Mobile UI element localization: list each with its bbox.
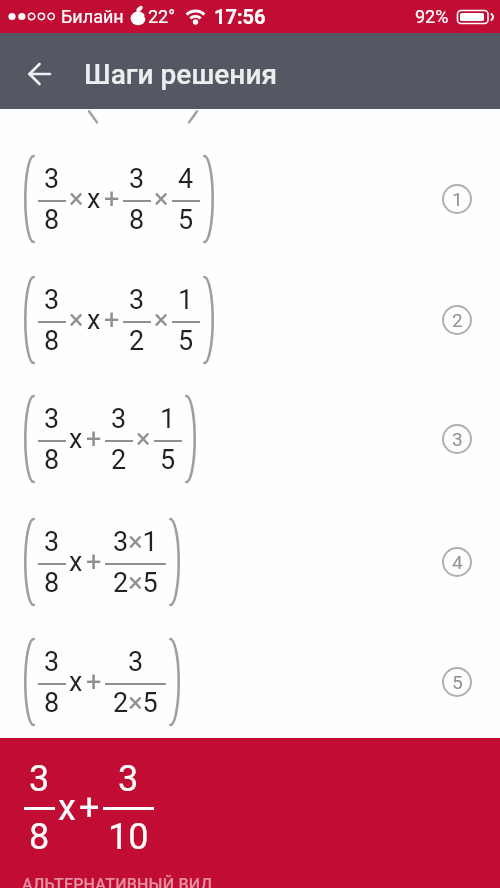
staticText: 4 bbox=[452, 551, 463, 573]
staticText: + bbox=[79, 787, 100, 829]
staticText: 1 bbox=[452, 188, 463, 210]
staticText: x bbox=[69, 666, 83, 698]
staticText: 4 bbox=[178, 163, 194, 195]
staticText: 2 bbox=[452, 309, 463, 331]
staticText: 3×1 bbox=[113, 526, 158, 558]
button[interactable]: 3 bbox=[0, 260, 500, 380]
staticText: 5 bbox=[452, 671, 463, 693]
staticText: Шаги решения bbox=[84, 58, 278, 91]
staticText: 3 bbox=[29, 758, 50, 800]
button[interactable] bbox=[16, 47, 64, 95]
staticText: 3 bbox=[44, 403, 60, 435]
staticText: 3 bbox=[129, 284, 145, 316]
staticText: 3 bbox=[44, 646, 60, 678]
staticText: + bbox=[104, 304, 120, 336]
staticText: 1 bbox=[160, 403, 176, 435]
staticText: 3 bbox=[129, 163, 145, 195]
staticText: 8 bbox=[129, 204, 145, 236]
staticText: 5 bbox=[178, 204, 194, 236]
staticText: 8 bbox=[29, 816, 50, 858]
staticText: 2 bbox=[129, 325, 145, 357]
button[interactable]: 3 bbox=[0, 622, 500, 742]
staticText: x bbox=[87, 304, 101, 336]
staticText: 2×5 bbox=[113, 567, 158, 599]
staticText: × bbox=[69, 304, 84, 336]
staticText: 92% bbox=[415, 6, 449, 27]
staticText: 3 bbox=[44, 163, 60, 195]
button[interactable]: 3 bbox=[0, 139, 500, 259]
staticText: x bbox=[87, 183, 101, 215]
staticText: 8 bbox=[44, 325, 60, 357]
staticText: x bbox=[69, 546, 83, 578]
staticText: × bbox=[136, 423, 151, 455]
staticText: + bbox=[104, 183, 120, 215]
staticText: + bbox=[86, 423, 102, 455]
staticText: 3 bbox=[128, 646, 144, 678]
button[interactable]: 3 bbox=[0, 379, 500, 499]
staticText: 8 bbox=[44, 567, 60, 599]
staticText: 1 bbox=[178, 284, 194, 316]
staticText: × bbox=[154, 183, 169, 215]
staticText: 10 bbox=[108, 816, 149, 858]
staticText: 3 bbox=[44, 526, 60, 558]
staticText: 3 bbox=[118, 758, 139, 800]
staticText: × bbox=[69, 183, 84, 215]
staticText: 2 bbox=[111, 444, 127, 476]
staticText: 22° bbox=[148, 6, 175, 27]
staticText: 5 bbox=[178, 325, 194, 357]
staticText: 8 bbox=[44, 687, 60, 719]
staticText: 5 bbox=[160, 444, 176, 476]
staticText: × bbox=[154, 304, 169, 336]
button[interactable]: 3 bbox=[0, 502, 500, 622]
button[interactable]: 3 bbox=[0, 738, 500, 888]
staticText: + bbox=[86, 546, 102, 578]
staticText: Билайн bbox=[61, 6, 124, 27]
staticText: 3 bbox=[452, 428, 463, 450]
staticText: 3 bbox=[44, 284, 60, 316]
staticText: АЛЬТЕРНАТИВНЫЙ ВИД bbox=[22, 875, 213, 888]
staticText: x bbox=[69, 423, 83, 455]
staticText: 17:56 bbox=[214, 5, 266, 28]
staticText: 8 bbox=[44, 204, 60, 236]
staticText: 2×5 bbox=[113, 687, 158, 719]
staticText: + bbox=[86, 666, 102, 698]
staticText: x bbox=[58, 787, 76, 829]
staticText: 8 bbox=[44, 444, 60, 476]
staticText: 3 bbox=[111, 403, 127, 435]
